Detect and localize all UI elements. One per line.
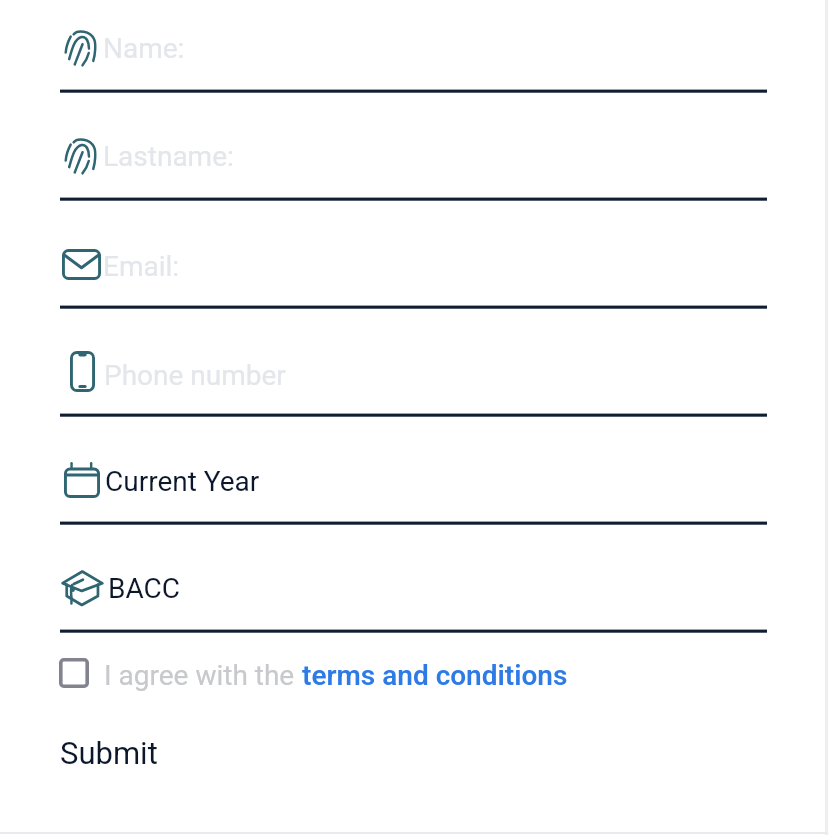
staticText: Name: [103,32,185,65]
staticText: Lastname: [103,140,234,173]
button[interactable]: Last name [60,128,767,201]
staticText: Current Year [105,465,260,498]
staticText: terms and conditions [302,659,568,692]
button[interactable]: First name [60,20,767,93]
button[interactable]: Diploma [60,560,767,633]
button[interactable]: Submit [58,727,168,769]
staticText: Phone number [104,359,286,392]
staticText: I agree with the [104,659,302,692]
staticText: BACC [108,572,181,605]
staticText: Email: [103,250,180,283]
staticText: Submit [60,735,158,771]
button[interactable]: Phone [60,344,767,417]
button[interactable]: Date [60,452,767,525]
button[interactable]: Email [60,236,767,309]
button[interactable]: I agree with the terms and conditions [57,654,91,692]
button[interactable]: terms and conditions [300,655,570,693]
